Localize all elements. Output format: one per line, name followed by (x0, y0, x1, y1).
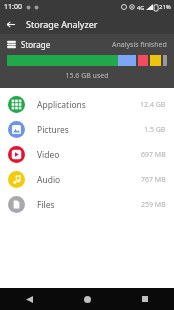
staticText: 15.6 GB used (7, 71, 167, 81)
button[interactable]: Pictures (0, 117, 174, 142)
staticText: Video (37, 149, 60, 161)
button[interactable]: Recents (116, 288, 174, 310)
button[interactable]: Back (0, 14, 20, 34)
staticText: Audio (37, 174, 61, 186)
staticText: Pictures (37, 124, 69, 136)
button[interactable]: Files (0, 192, 174, 217)
button[interactable]: Applications (0, 92, 174, 117)
button[interactable]: Storage (0, 34, 174, 88)
button[interactable]: Home (58, 288, 116, 310)
staticText: Storage (21, 39, 51, 50)
staticText: Analysis finished (112, 40, 167, 50)
button[interactable]: Audio (0, 167, 174, 192)
staticText: Storage Analyzer (26, 18, 98, 30)
button[interactable]: Video (0, 142, 174, 167)
staticText: 12.4 GB (140, 100, 166, 110)
button[interactable]: Back (0, 288, 58, 310)
staticText: 11:00 (4, 2, 22, 12)
staticText: Files (37, 199, 55, 211)
staticText: 4G (137, 4, 145, 11)
staticText: 697 MB (141, 150, 166, 160)
staticText: 21% (159, 3, 171, 11)
staticText: Applications (37, 99, 86, 111)
staticText: 1.5 GB (144, 125, 166, 135)
staticText: 259 MB (141, 200, 166, 210)
staticText: 767 MB (141, 175, 166, 185)
